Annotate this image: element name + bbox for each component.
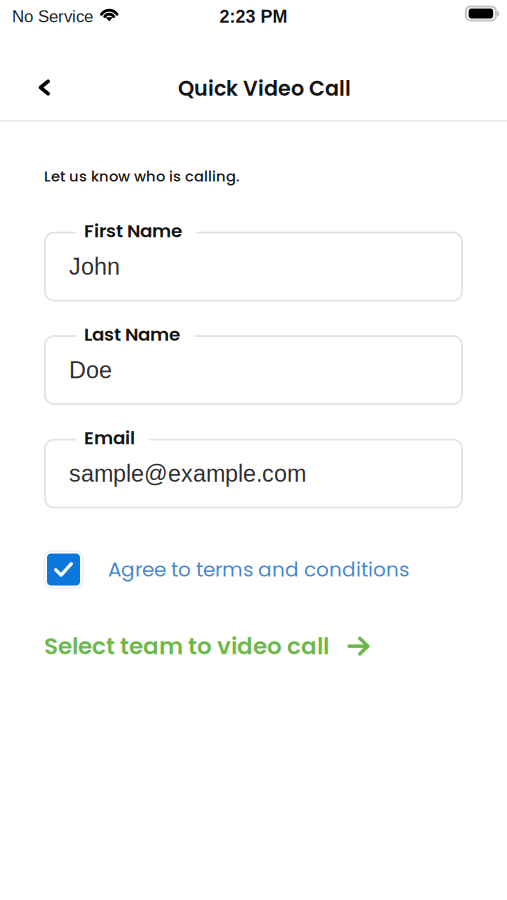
staticText: Quick Video Call: [178, 74, 351, 103]
staticText: Last Name: [84, 321, 180, 347]
staticText: Doe: [69, 357, 112, 383]
staticText: Agree to terms and conditions: [108, 555, 409, 583]
button[interactable]: Select team to video call: [44, 630, 369, 662]
staticText: sample@example.com: [69, 460, 306, 487]
staticText: No Service: [12, 7, 93, 26]
staticText: 2:23 PM: [219, 6, 287, 26]
staticText: Let us know who is calling.: [44, 166, 240, 186]
button[interactable]: Agree to terms and conditions, checked: [47, 553, 80, 585]
staticText: John: [69, 253, 120, 280]
staticText: First Name: [84, 218, 182, 244]
staticText: Email: [84, 425, 135, 451]
staticText: Select team to video call: [44, 630, 329, 662]
button[interactable]: Back: [22, 65, 66, 109]
button[interactable]: Agree to terms and conditions: [108, 555, 409, 583]
